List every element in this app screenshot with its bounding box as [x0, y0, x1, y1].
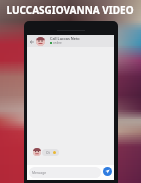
staticText: Message	[32, 170, 47, 175]
button[interactable]: Message	[29, 167, 101, 178]
staticText: LUCCASGIOVANNA VIDEO	[6, 3, 134, 17]
staticText: online	[53, 41, 62, 45]
button[interactable]: Send	[103, 167, 112, 176]
staticText: Oi	[46, 150, 50, 155]
staticText: Call Luccas Neto	[50, 36, 80, 41]
button[interactable]: Oi	[42, 149, 59, 156]
button[interactable]: Back	[27, 35, 114, 47]
button[interactable]: Back	[28, 38, 35, 45]
